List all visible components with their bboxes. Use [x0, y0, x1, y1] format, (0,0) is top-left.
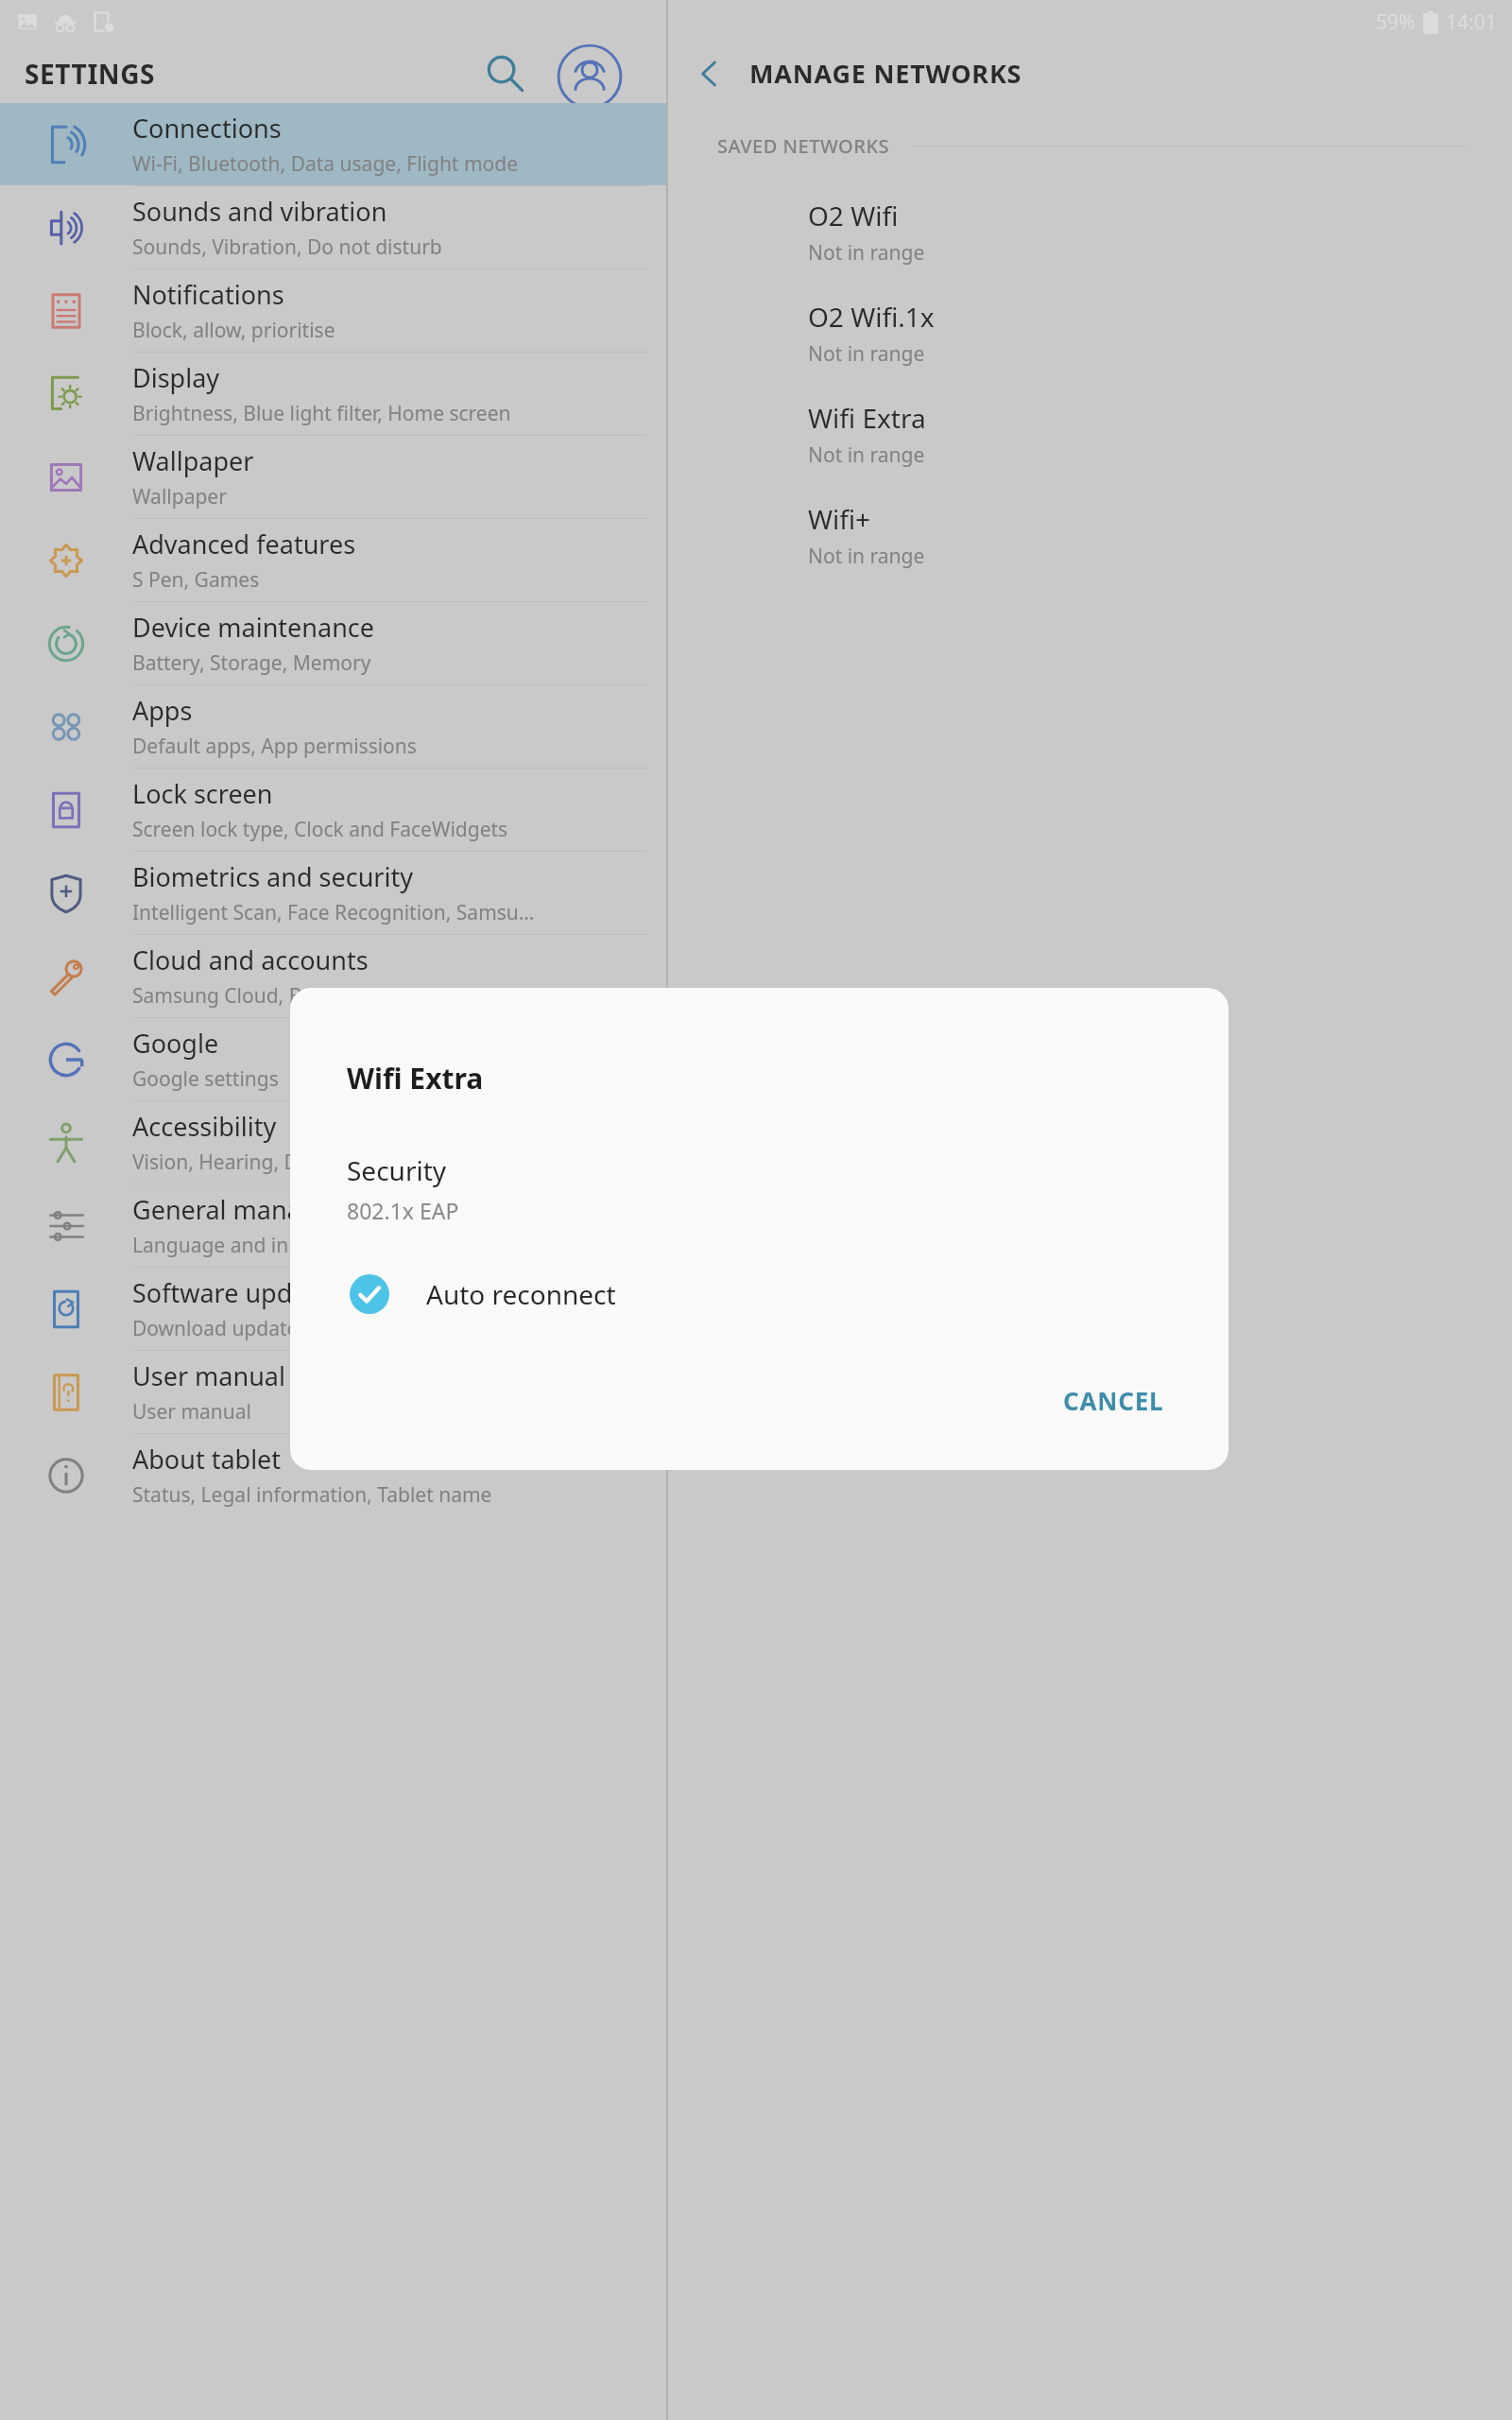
staticText: Not in range: [808, 239, 925, 267]
staticText: Sounds, Vibration, Do not disturb: [132, 233, 442, 261]
staticText: MANAGE NETWORKS: [749, 56, 1022, 91]
button[interactable]: Connections: [0, 103, 666, 185]
button[interactable]: Auto reconnect: [290, 1261, 1228, 1327]
button[interactable]: Apps: [0, 685, 666, 768]
staticText: Google settings: [132, 1065, 279, 1093]
staticText: 59%: [1376, 9, 1416, 36]
staticText: Apps: [132, 693, 193, 728]
staticText: Wallpaper: [132, 483, 227, 510]
button[interactable]: General management: [0, 1184, 666, 1267]
staticText: Google: [132, 1026, 219, 1061]
staticText: Brightness, Blue light filter, Home scre…: [132, 400, 511, 427]
staticText: Wallpaper: [132, 443, 254, 478]
staticText: Software update: [132, 1275, 331, 1310]
staticText: Wifi Extra: [347, 1059, 484, 1098]
staticText: Vision, Hearing, Dexterity and interacti…: [132, 1149, 516, 1176]
staticText: Download updates, Scheduled sof…: [132, 1315, 464, 1342]
button[interactable]: CANCEL: [1042, 1369, 1185, 1432]
staticText: Connections: [132, 111, 282, 146]
button[interactable]: About tablet: [0, 1434, 666, 1516]
staticText: About tablet: [132, 1442, 282, 1477]
staticText: General management: [132, 1192, 395, 1227]
staticText: Not in range: [808, 441, 925, 469]
button[interactable]: Biometrics and security: [0, 852, 666, 934]
button[interactable]: O2 Wifi.1x: [668, 283, 1512, 384]
button[interactable]: Accessibility: [0, 1101, 666, 1184]
staticText: 14:01: [1446, 9, 1497, 36]
button[interactable]: Cloud and accounts: [0, 935, 666, 1017]
staticText: Battery, Storage, Memory: [132, 649, 371, 677]
staticText: Intelligent Scan, Face Recognition, Sams…: [132, 899, 535, 926]
staticText: Language and input, Date and time, Reset: [132, 1232, 524, 1259]
staticText: S Pen, Games: [132, 566, 260, 594]
staticText: Auto reconnect: [426, 1276, 616, 1312]
staticText: Sounds and vibration: [132, 194, 387, 229]
staticText: 1: [599, 1295, 611, 1323]
button[interactable]: Wallpaper: [0, 436, 666, 518]
staticText: Wifi Extra: [808, 400, 926, 436]
button[interactable]: Sounds and vibration: [0, 186, 666, 268]
staticText: O2 Wifi.1x: [808, 299, 935, 335]
staticText: Accessibility: [132, 1109, 277, 1144]
button[interactable]: Google: [0, 1018, 666, 1100]
staticText: 802.1x EAP: [347, 1196, 459, 1225]
staticText: Screen lock type, Clock and FaceWidgets: [132, 816, 508, 843]
staticText: SETTINGS: [25, 56, 156, 92]
staticText: Security: [347, 1152, 447, 1188]
button[interactable]: Lock screen: [0, 769, 666, 851]
button[interactable]: Software update: [0, 1268, 666, 1350]
staticText: Device maintenance: [132, 610, 375, 645]
button[interactable]: Wifi+: [668, 485, 1512, 586]
staticText: Advanced features: [132, 527, 356, 562]
staticText: Wi-Fi, Bluetooth, Data usage, Flight mod…: [132, 150, 519, 178]
staticText: Not in range: [808, 340, 925, 368]
staticText: Not in range: [808, 543, 925, 570]
staticText: Default apps, App permissions: [132, 733, 417, 760]
button[interactable]: User manual: [0, 1351, 666, 1433]
staticText: SAVED NETWORKS: [717, 133, 890, 159]
staticText: Notifications: [132, 277, 284, 312]
staticText: Display: [132, 360, 220, 395]
staticText: Block, allow, prioritise: [132, 317, 335, 344]
button[interactable]: Back: [668, 43, 749, 103]
button[interactable]: Wifi Extra: [668, 384, 1512, 485]
staticText: Biometrics and security: [132, 859, 413, 894]
staticText: Status, Legal information, Tablet name: [132, 1481, 492, 1509]
staticText: CANCEL: [1063, 1384, 1164, 1417]
button[interactable]: Search: [472, 43, 540, 103]
staticText: O2 Wifi: [808, 198, 899, 233]
button[interactable]: Display: [0, 353, 666, 435]
button[interactable]: Device maintenance: [0, 602, 666, 684]
staticText: Lock screen: [132, 776, 273, 811]
button[interactable]: Account: [553, 43, 627, 103]
staticText: Samsung Cloud, Backup and restore, Sma…: [132, 982, 538, 1010]
staticText: User manual: [132, 1398, 251, 1426]
staticText: Wifi+: [808, 501, 871, 537]
staticText: User manual: [132, 1358, 285, 1393]
button[interactable]: O2 Wifi: [668, 181, 1512, 283]
staticText: Cloud and accounts: [132, 942, 369, 977]
button[interactable]: Notifications: [0, 269, 666, 352]
button[interactable]: Advanced features: [0, 519, 666, 601]
